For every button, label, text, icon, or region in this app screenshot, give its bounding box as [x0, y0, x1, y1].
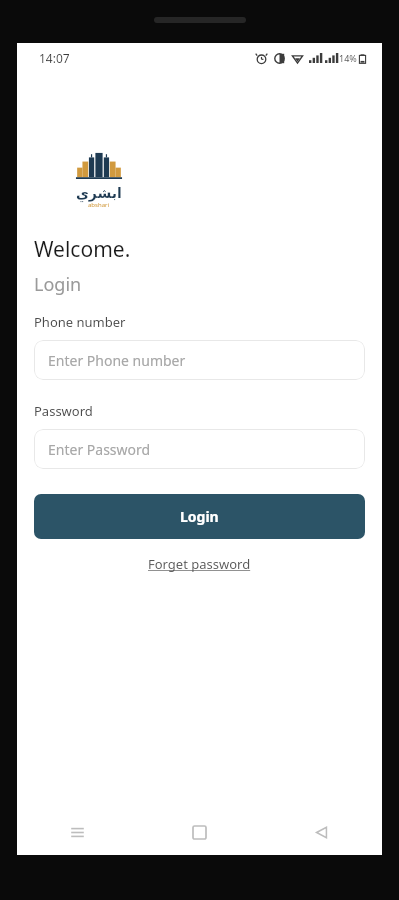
staticText: Phone number [34, 313, 126, 331]
staticText: ابشري [76, 185, 122, 201]
button[interactable]: Enter Phone number [34, 340, 365, 380]
button[interactable]: Back [260, 809, 382, 855]
button[interactable]: Login [34, 494, 365, 539]
staticText: Enter Phone number [48, 351, 186, 370]
staticText: Login [180, 507, 219, 526]
staticText: 14:07 [39, 50, 70, 66]
button[interactable]: Home [138, 809, 260, 855]
staticText: Enter Password [48, 440, 151, 459]
staticText: 14% [339, 52, 357, 64]
staticText: Password [34, 402, 93, 420]
button[interactable]: Enter Password [34, 429, 365, 469]
button[interactable]: Forget password [140, 551, 259, 577]
staticText: Login [34, 272, 82, 297]
staticText: abshari [88, 201, 110, 209]
staticText: Forget password [148, 555, 251, 573]
staticText: Welcome. [34, 235, 131, 264]
button[interactable]: Recent apps [17, 809, 138, 855]
